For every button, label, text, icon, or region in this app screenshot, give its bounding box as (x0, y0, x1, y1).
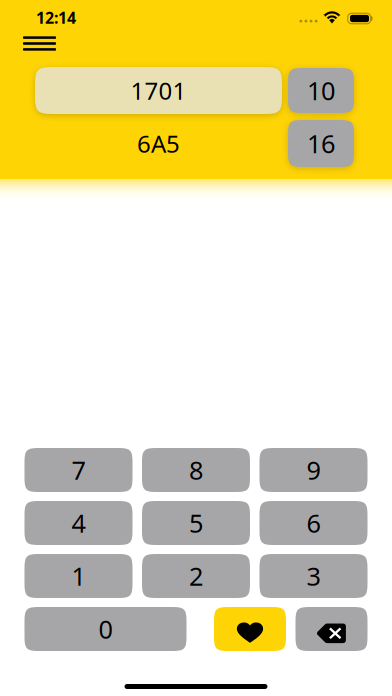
button[interactable]: 1 (24, 554, 132, 598)
staticText: 16 (307, 127, 335, 160)
staticText: 10 (307, 74, 335, 107)
staticText: 1 (71, 559, 85, 593)
button[interactable]: 6A5 (35, 120, 282, 166)
staticText: 12:14 (36, 7, 76, 28)
staticText: 6 (306, 506, 320, 540)
button[interactable]: 10 (288, 68, 354, 113)
button[interactable]: 6 (259, 501, 367, 545)
button[interactable]: Favorite (214, 607, 286, 651)
staticText: 0 (98, 612, 112, 646)
staticText: 8 (189, 453, 203, 487)
button[interactable]: 0 (24, 607, 186, 651)
button[interactable]: 16 (288, 120, 354, 167)
button[interactable]: 4 (24, 501, 132, 545)
button[interactable]: Menu (17, 28, 62, 58)
button[interactable]: 9 (259, 448, 367, 492)
staticText: 5 (189, 506, 203, 540)
staticText: 7 (71, 453, 85, 487)
staticText: 9 (306, 453, 320, 487)
staticText: 2 (189, 559, 203, 593)
button[interactable]: 8 (142, 448, 250, 492)
staticText: 3 (306, 559, 320, 593)
button[interactable]: 5 (142, 501, 250, 545)
button[interactable]: 3 (259, 554, 367, 598)
button[interactable]: 2 (142, 554, 250, 598)
staticText: 6A5 (137, 128, 180, 159)
button[interactable]: Delete (295, 607, 367, 651)
staticText: 1701 (130, 75, 186, 106)
button[interactable]: 7 (24, 448, 132, 492)
button[interactable]: 1701 (35, 67, 282, 114)
staticText: 4 (71, 506, 85, 540)
